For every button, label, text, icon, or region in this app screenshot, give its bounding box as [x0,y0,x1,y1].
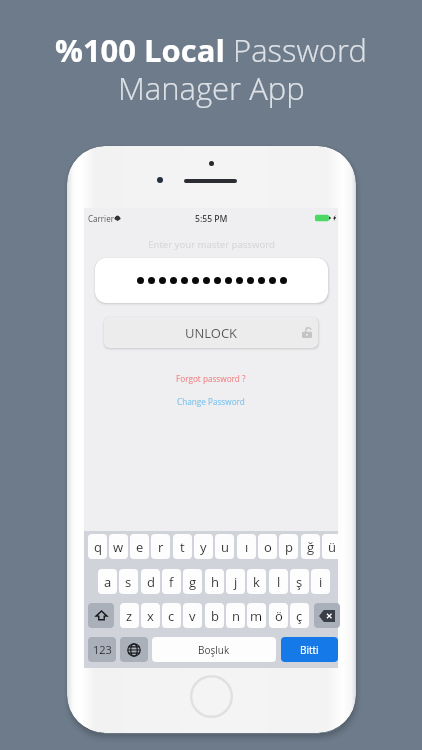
button[interactable]: x [141,603,160,628]
button[interactable]: r [151,534,170,559]
button[interactable]: p [279,534,298,559]
button[interactable]: j [226,569,245,594]
button[interactable]: ü [322,534,341,559]
other: Home [190,675,233,718]
button[interactable]: ö [269,603,288,628]
staticText: ı [245,538,249,556]
button[interactable]: n [226,603,245,628]
button[interactable]: f [162,569,181,594]
staticText: Forgot password ? [176,373,246,384]
staticText: u [221,538,229,556]
button[interactable]: Shift [88,603,114,628]
button[interactable]: UNLOCK [104,317,318,348]
button[interactable]: s [119,569,138,594]
staticText: l [277,573,281,591]
button[interactable]: ğ [301,534,320,559]
staticText: p [285,538,293,556]
staticText: x [147,607,154,625]
button[interactable]: g [183,569,202,594]
button[interactable]: ş [290,569,309,594]
staticText: Manager App [118,67,305,109]
staticText: Bitti [300,643,319,657]
button[interactable]: b [205,603,224,628]
button[interactable]: z [120,603,139,628]
button[interactable]: u [215,534,234,559]
staticText: ç [296,607,303,625]
staticText: v [189,607,196,625]
staticText: f [169,573,174,591]
staticText: 123 [93,642,112,657]
staticText: ö [275,607,283,625]
staticText: UNLOCK [185,324,238,342]
staticText: n [232,607,240,625]
staticText: 5:55 PM [195,213,228,225]
staticText: b [211,607,219,625]
staticText: r [158,538,164,556]
button[interactable]: Boşluk [152,637,276,662]
staticText: q [94,538,102,556]
button[interactable]: Forgot password ? [84,371,338,386]
staticText: ğ [307,538,315,556]
button[interactable]: k [247,569,266,594]
button[interactable]: Backspace [314,603,340,628]
button[interactable]: c [162,603,181,628]
staticText: s [125,573,132,591]
button[interactable]: l [269,569,288,594]
button[interactable]: y [194,534,213,559]
staticText: e [136,538,144,556]
button[interactable]: t [173,534,192,559]
button[interactable]: w [109,534,128,559]
button[interactable]: 123 [88,637,116,662]
staticText: t [180,538,185,556]
staticText: o [264,538,272,556]
button[interactable]: h [205,569,224,594]
button[interactable]: ı [237,534,256,559]
button[interactable]: o [258,534,277,559]
button[interactable]: a [98,569,117,594]
button[interactable]: m [247,603,266,628]
staticText: Carrier [88,213,114,224]
button[interactable]: e [130,534,149,559]
staticText: j [234,573,238,591]
button[interactable]: q [88,534,107,559]
button[interactable] [95,258,328,303]
button[interactable]: Change Password [84,394,338,409]
staticText: z [126,607,133,625]
staticText: c [168,607,175,625]
staticText: ü [328,538,336,556]
staticText: k [253,573,260,591]
staticText: w [113,538,124,556]
staticText: ş [296,573,303,591]
staticText: i [319,573,323,591]
staticText: g [189,573,197,591]
staticText: %100 Local [55,29,233,71]
button[interactable]: v [183,603,202,628]
staticText: Change Password [177,396,245,407]
staticText: h [211,573,219,591]
button[interactable]: i [311,569,330,594]
staticText: y [200,538,207,556]
staticText: a [104,573,112,591]
button[interactable]: Switch keyboard [120,637,148,662]
button[interactable]: Bitti [281,637,338,662]
button[interactable]: ç [290,603,309,628]
button[interactable]: d [141,569,160,594]
staticText: Boşluk [198,643,230,657]
staticText: Enter your master password [148,238,275,251]
staticText: Password [233,29,367,71]
staticText: d [147,573,155,591]
staticText: m [250,607,263,625]
